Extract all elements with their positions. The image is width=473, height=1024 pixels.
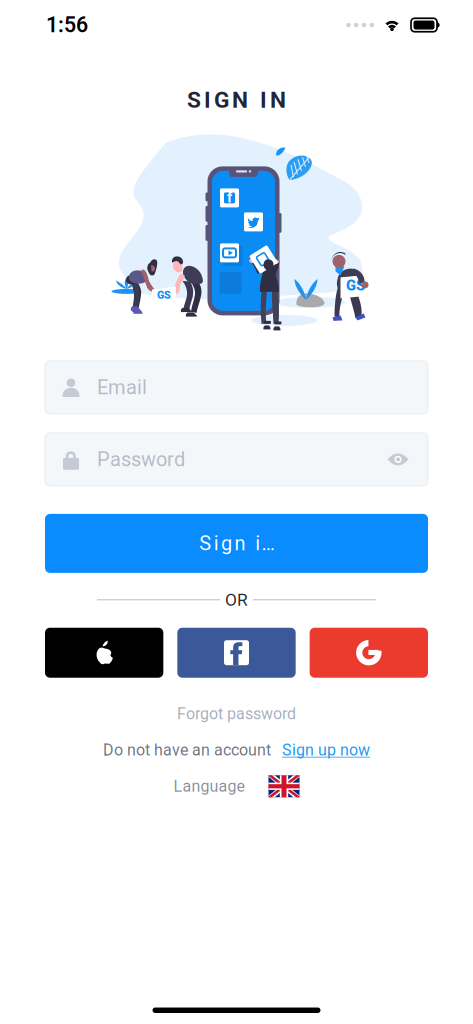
staticText: Password [97, 448, 185, 471]
button[interactable]: Forgot password [177, 700, 296, 728]
staticText: Email [97, 376, 147, 399]
staticText: Do not have an account [103, 741, 271, 759]
staticText: GS [157, 289, 171, 301]
button[interactable]: Sign in with Google [310, 628, 428, 678]
button[interactable]: Sign up now [282, 741, 370, 759]
staticText: Sign in [199, 532, 274, 555]
staticText: Forgot password [177, 705, 296, 723]
button[interactable]: Language [173, 775, 299, 797]
staticText: 1:56 [46, 13, 88, 37]
staticText: OR [225, 590, 248, 610]
staticText: f [227, 189, 232, 206]
button[interactable]: Sign in [45, 514, 428, 573]
staticText: SIGN IN [187, 87, 286, 113]
staticText: GS [346, 277, 365, 294]
staticText: Language [173, 777, 244, 795]
staticText: Sign up now [282, 741, 370, 759]
button[interactable]: Sign in with Facebook [177, 628, 296, 678]
button[interactable]: Show password [382, 441, 414, 477]
button[interactable]: Sign in with Apple [45, 628, 163, 678]
